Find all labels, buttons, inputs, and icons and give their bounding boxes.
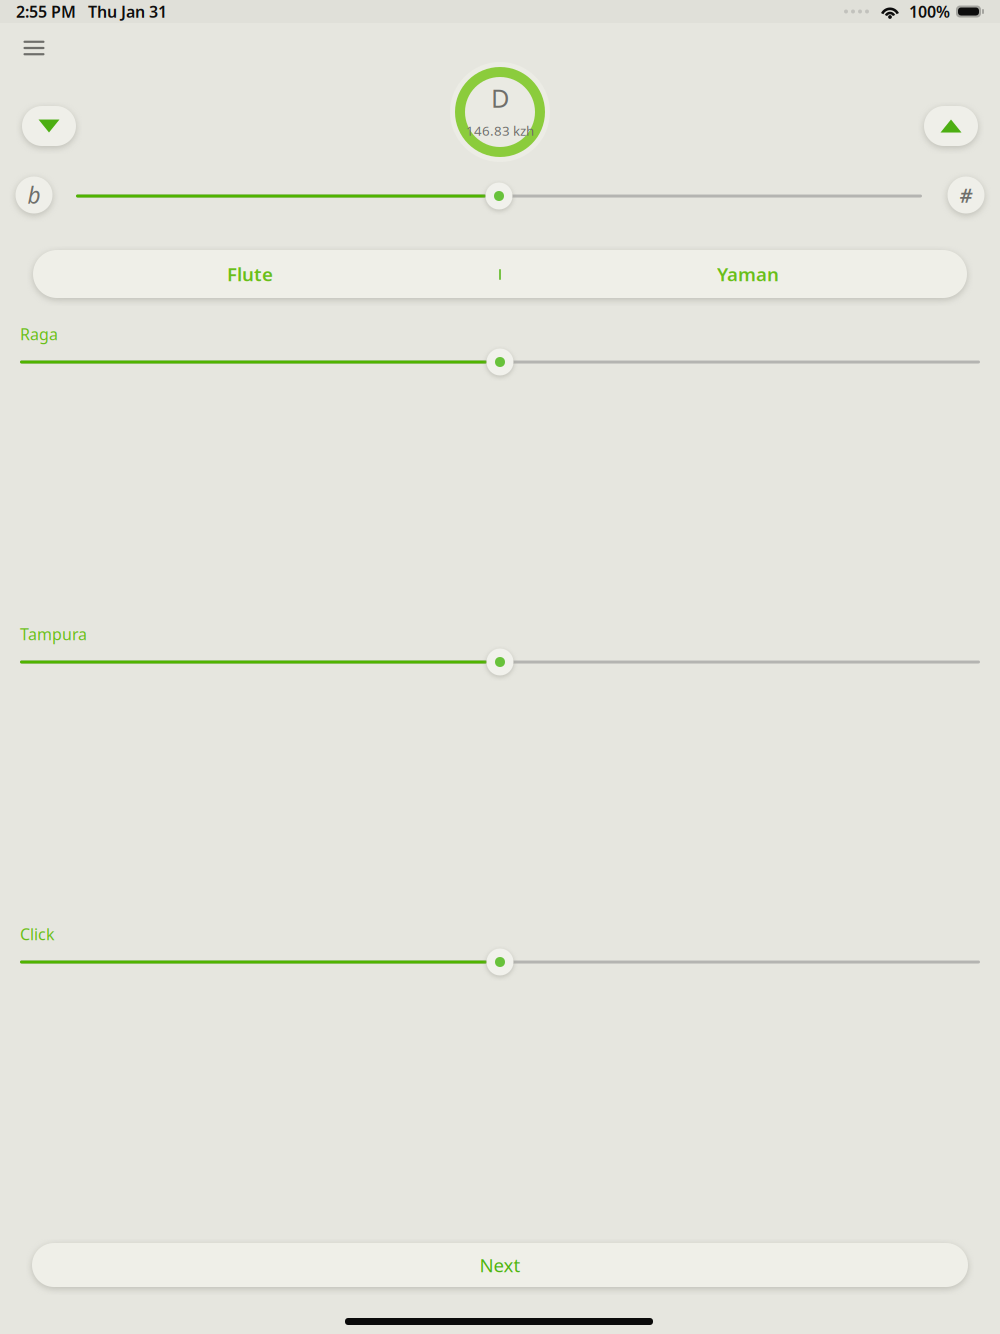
staticText: Flute (227, 262, 273, 286)
button[interactable]: Yaman (531, 250, 965, 298)
button[interactable]: Sharp (942, 171, 990, 219)
button[interactable]: Next (32, 1243, 968, 1287)
staticText: Click (20, 923, 55, 945)
button[interactable]: Lower octave (14, 97, 84, 155)
button[interactable]: Flute (33, 250, 467, 298)
staticText: Thu Jan 31 (88, 1, 167, 22)
button[interactable]: Flat (10, 171, 58, 219)
staticText: b (27, 180, 40, 210)
staticText: Next (479, 1253, 520, 1277)
staticText: 2:55 PM (16, 1, 76, 22)
staticText: D (491, 81, 509, 115)
staticText: Yaman (717, 262, 779, 286)
staticText: Tampura (20, 623, 87, 645)
button[interactable]: Menu (12, 26, 56, 70)
staticText: # (959, 182, 972, 208)
button[interactable]: Raise octave (916, 97, 986, 155)
staticText: Raga (20, 323, 58, 345)
staticText: 100% (909, 1, 950, 22)
staticText: 146.83 kzh (466, 122, 534, 139)
